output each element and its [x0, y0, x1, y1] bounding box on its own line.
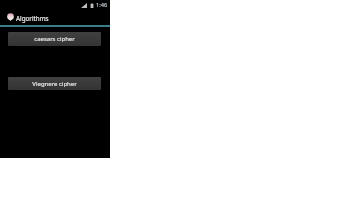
staticText: caesars cipher: [34, 35, 75, 43]
other: Battery: [90, 3, 94, 8]
other: Signal strength: [81, 3, 87, 8]
button[interactable]: Algorithms app icon: [7, 13, 14, 21]
button[interactable]: caesars cipher: [8, 32, 101, 46]
staticText: Algorithms: [16, 14, 49, 23]
staticText: 1:46: [96, 1, 108, 9]
button[interactable]: Viegnere cipher: [8, 77, 101, 90]
staticText: Viegnere cipher: [32, 80, 77, 88]
